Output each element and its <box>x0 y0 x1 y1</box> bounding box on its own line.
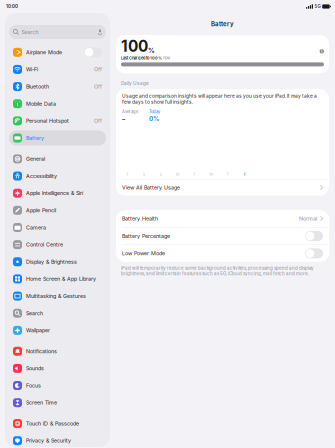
staticText: F <box>126 172 128 177</box>
button[interactable]: General <box>9 151 106 166</box>
staticText: Daily Usage <box>121 80 149 86</box>
staticText: Last Charged to 100% <box>121 56 162 60</box>
staticText: W <box>209 172 213 177</box>
staticText: Battery <box>211 20 234 28</box>
staticText: Search <box>26 310 43 316</box>
staticText: T <box>226 172 229 177</box>
staticText: Privacy & Security <box>26 437 71 444</box>
button[interactable]: Wi-Fi <box>9 62 106 77</box>
button[interactable]: Low Power Mode <box>116 245 329 262</box>
staticText: 100 <box>121 37 148 56</box>
button[interactable]: Battery Percentage <box>116 227 329 244</box>
staticText: Screen Time <box>26 399 57 406</box>
staticText: Bluetooth <box>26 83 49 90</box>
button[interactable]: Bluetooth <box>9 79 106 94</box>
staticText: Normal <box>299 215 317 222</box>
button[interactable]: About battery <box>320 49 324 56</box>
button[interactable]: Accessibility <box>9 168 106 184</box>
staticText: % <box>148 46 155 54</box>
staticText: i <box>321 49 322 54</box>
staticText: Average <box>122 109 138 114</box>
staticText: Control Centre <box>26 241 63 248</box>
staticText: Low Power Mode <box>122 250 165 257</box>
staticText: Camera <box>26 224 46 231</box>
button[interactable]: Sounds <box>9 361 106 376</box>
button[interactable]: Home Screen & App Library <box>9 271 106 287</box>
button[interactable]: Apple Pencil <box>9 203 106 218</box>
button[interactable]: View All Battery Usage <box>116 180 329 196</box>
staticText: Battery Percentage <box>122 233 170 239</box>
button[interactable]: Airplane Mode <box>9 45 106 60</box>
staticText: Focus <box>26 382 41 389</box>
button[interactable]: Notifications <box>9 344 106 359</box>
button[interactable]: Camera <box>9 220 106 235</box>
staticText: Search <box>21 29 38 35</box>
staticText: Wi-Fi <box>26 66 38 73</box>
staticText: Off <box>94 66 102 73</box>
staticText: Accessibility <box>26 173 57 179</box>
staticText: 0% <box>149 115 159 122</box>
staticText: now <box>162 56 170 60</box>
button[interactable]: Screen Time <box>9 395 106 410</box>
staticText: Off <box>94 118 102 124</box>
staticText: Apple Intelligence & Siri <box>26 190 83 196</box>
button[interactable]: Search <box>9 306 106 321</box>
staticText: T <box>193 172 196 177</box>
staticText: Apple Pencil <box>26 207 56 214</box>
staticText: General <box>26 156 45 162</box>
staticText: S <box>159 172 162 177</box>
staticText: Home Screen & App Library <box>26 276 96 282</box>
button[interactable]: Touch ID & Passcode <box>9 416 106 431</box>
staticText: Battery <box>26 135 44 141</box>
staticText: Notifications <box>26 348 57 354</box>
staticText: F <box>244 172 246 177</box>
staticText: Personal Hotspot <box>26 118 69 124</box>
staticText: Wallpaper <box>26 327 50 334</box>
button[interactable]: Apple Intelligence & Siri <box>9 186 106 201</box>
staticText: Today <box>149 109 160 114</box>
staticText: S <box>143 172 146 177</box>
button[interactable]: Mobile Data <box>9 96 106 111</box>
staticText: Usage and comparison insights will appea… <box>122 93 317 105</box>
staticText: View All Battery Usage <box>122 184 180 191</box>
staticText: Sounds <box>26 365 44 372</box>
staticText: Touch ID & Passcode <box>26 420 79 427</box>
button[interactable]: Multitasking & Gestures <box>9 288 106 304</box>
staticText: Multitasking & Gestures <box>26 293 86 299</box>
staticText: 10:00 <box>6 4 18 9</box>
staticText: Display & Brightness <box>26 258 77 265</box>
button[interactable]: Battery <box>9 130 106 146</box>
button[interactable]: Search <box>9 25 106 39</box>
staticText: M <box>176 172 180 177</box>
button[interactable]: Privacy & Security <box>9 433 106 448</box>
button[interactable]: Battery Health <box>116 210 329 227</box>
button[interactable]: Control Centre <box>9 237 106 252</box>
staticText: – <box>122 115 125 122</box>
staticText: Mobile Data <box>26 100 56 107</box>
button[interactable]: Wallpaper <box>9 323 106 338</box>
staticText: Airplane Mode <box>26 49 62 55</box>
staticText: Battery Health <box>122 215 158 222</box>
button[interactable]: Display & Brightness <box>9 254 106 269</box>
button[interactable]: Personal Hotspot <box>9 113 106 128</box>
staticText: Off <box>94 83 102 90</box>
staticText: 5G <box>315 4 321 9</box>
staticText: iPad will temporarily reduce some backgr… <box>121 265 314 276</box>
button[interactable]: Focus <box>9 378 106 393</box>
